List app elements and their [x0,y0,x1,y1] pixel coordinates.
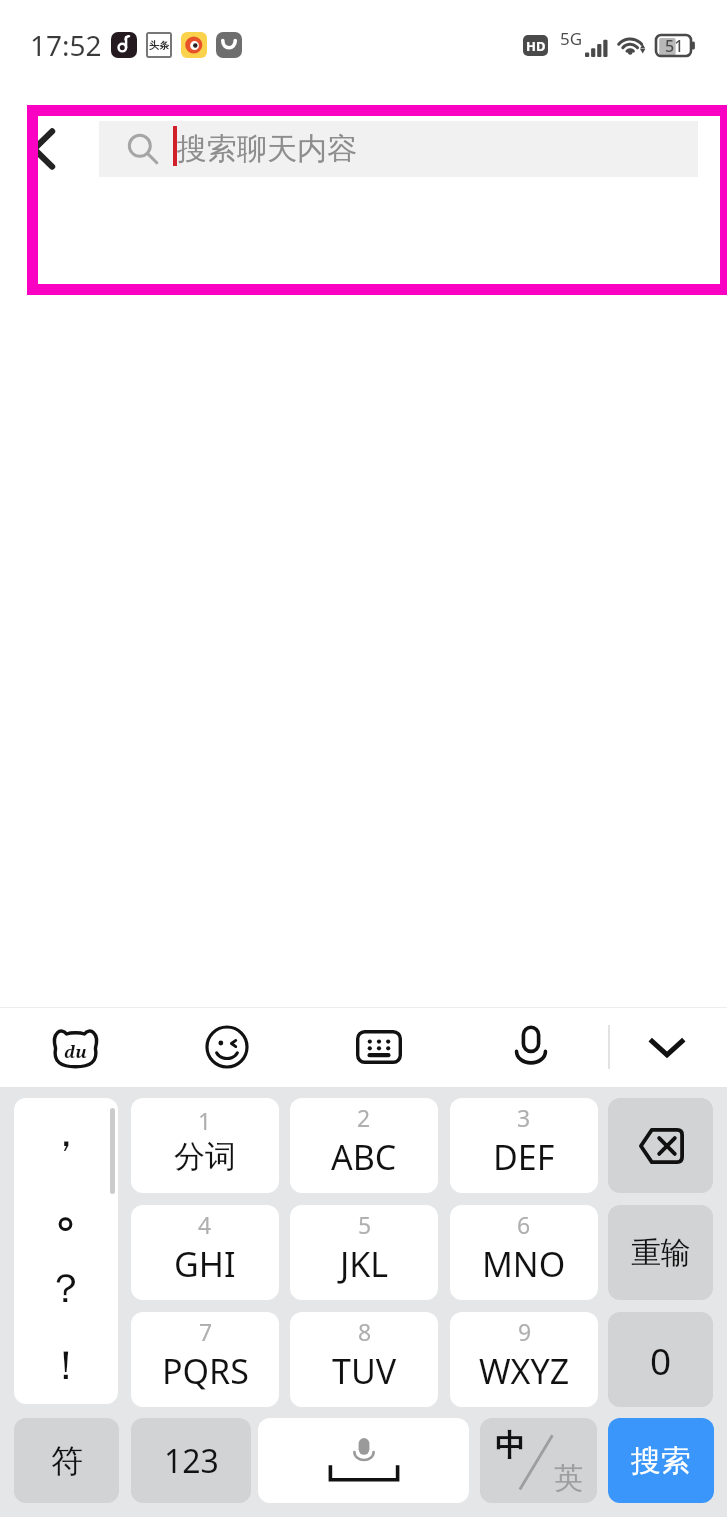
button[interactable]: Keyboard layout [354,1007,404,1087]
button[interactable]: 7 [131,1312,279,1407]
button[interactable]: 3 [450,1098,598,1193]
staticText: GHI [174,1241,236,1287]
button[interactable]: 搜索 [608,1418,714,1503]
staticText: 6 [517,1209,531,1240]
button[interactable]: 8 [290,1312,438,1407]
button[interactable]: ， [14,1098,118,1404]
staticText: 51 [665,35,684,57]
staticText: 3 [517,1102,531,1133]
staticText: 4 [198,1209,212,1240]
button[interactable]: 6 [450,1205,598,1300]
staticText: WXYZ [479,1348,570,1394]
staticText: PQRS [162,1348,249,1394]
button[interactable]: Emoji [202,1007,252,1087]
button[interactable]: Backspace [608,1098,713,1193]
button[interactable]: 5 [290,1205,438,1300]
button[interactable]: 4 [131,1205,279,1300]
staticText: 搜索 [631,1442,691,1480]
button[interactable]: 123 [131,1418,251,1503]
staticText: 1 [198,1105,212,1136]
staticText: 符 [51,1441,83,1481]
staticText: ！ [46,1340,86,1390]
button[interactable]: Space [258,1418,469,1503]
staticText: ABC [331,1134,397,1180]
staticText: du [64,1040,87,1063]
staticText: 中 [495,1427,525,1465]
button[interactable]: 符 [14,1418,119,1503]
staticText: 123 [164,1439,219,1483]
staticText: 5 [358,1209,372,1240]
button[interactable]: Voice input [506,1007,556,1087]
staticText: DEF [493,1134,555,1180]
staticText: 7 [199,1316,213,1347]
button[interactable]: Baidu input [50,1007,100,1087]
staticText: 2 [357,1102,371,1133]
button[interactable]: 中 [480,1418,597,1503]
staticText: 17:52 [30,26,102,64]
button[interactable]: 2 [290,1098,438,1193]
staticText: ， [46,1107,86,1157]
button[interactable]: 0 [608,1312,713,1407]
staticText: 9 [518,1316,532,1347]
staticText: 5G [560,27,583,50]
button[interactable]: Hide keyboard [642,1007,692,1087]
staticText: 英 [554,1460,583,1497]
staticText: 8 [358,1316,372,1347]
button[interactable]: 9 [450,1312,598,1407]
staticText: 搜索聊天内容 [177,130,357,168]
staticText: TUV [332,1348,397,1394]
staticText: 分词 [174,1137,236,1176]
staticText: ？ [46,1263,86,1313]
staticText: 0 [650,1335,672,1385]
button[interactable]: Back [27,105,99,193]
staticText: 头条 [149,39,169,52]
staticText: HD [526,37,546,55]
button[interactable]: 重输 [608,1205,713,1300]
button[interactable]: 1 [131,1098,279,1193]
staticText: JKL [340,1241,389,1287]
button[interactable]: 搜索聊天内容 [99,121,698,177]
staticText: 重输 [631,1234,691,1272]
staticText: MNO [482,1241,566,1287]
